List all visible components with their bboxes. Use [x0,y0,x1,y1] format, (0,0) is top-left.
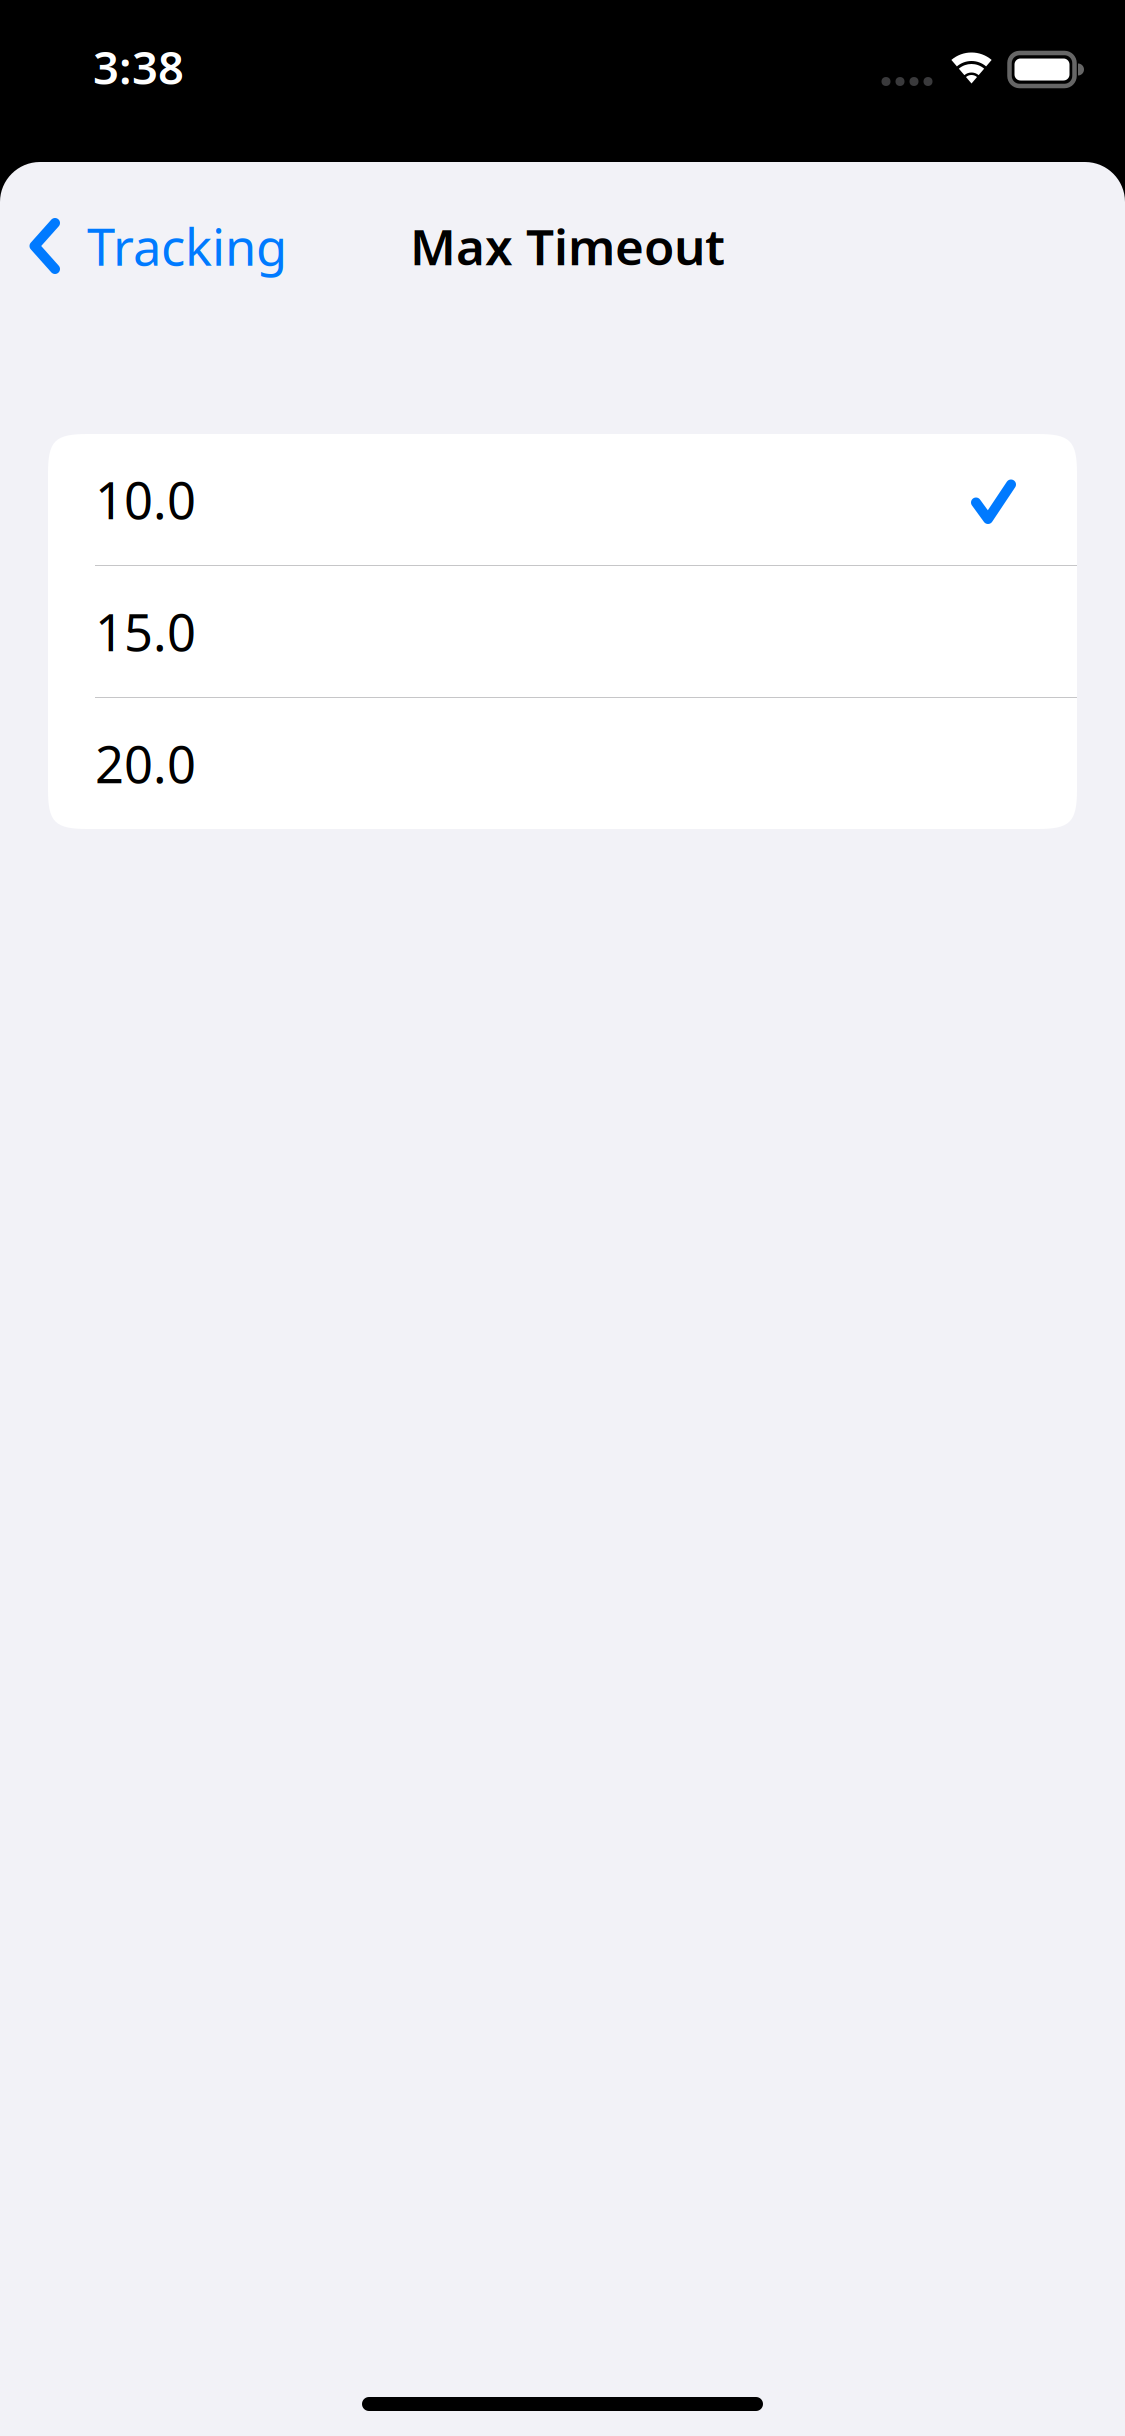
button[interactable]: 15.0 [48,566,1077,698]
button[interactable]: 10.0 [48,434,1077,566]
staticText: Max Timeout [410,213,725,279]
button[interactable]: 20.0 [48,698,1077,829]
staticText: 10.0 [95,466,196,533]
button[interactable]: Back to Tracking [0,162,311,330]
staticText: 20.0 [95,730,196,797]
staticText: Tracking [87,212,287,280]
staticText: 3:38 [93,37,184,97]
staticText: 15.0 [95,598,196,665]
